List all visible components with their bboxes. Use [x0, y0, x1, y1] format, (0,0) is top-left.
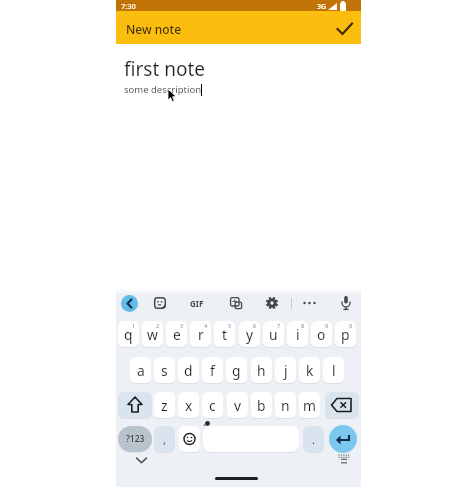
staticText: x	[185, 396, 193, 415]
button[interactable]	[336, 453, 352, 465]
staticText: 5	[228, 322, 232, 329]
staticText: y	[246, 325, 254, 344]
staticText: q	[124, 325, 133, 344]
button[interactable]: c	[202, 392, 223, 418]
button[interactable]: q	[118, 321, 139, 347]
staticText: v	[234, 396, 242, 415]
staticText: 6	[253, 322, 257, 329]
button[interactable]: k	[299, 357, 320, 383]
button[interactable]: n	[275, 392, 296, 418]
button[interactable]	[118, 392, 152, 418]
staticText: s	[161, 361, 168, 380]
button[interactable]: ?123	[118, 426, 152, 452]
button[interactable]: s	[154, 357, 175, 383]
staticText: 9	[325, 322, 329, 329]
button[interactable]: i	[287, 321, 308, 347]
staticText: u	[269, 325, 278, 344]
button[interactable]: e	[166, 321, 187, 347]
button[interactable]: b	[251, 392, 272, 418]
button[interactable]: .	[303, 426, 324, 452]
button[interactable]	[329, 425, 357, 453]
staticText: ,	[163, 432, 166, 447]
staticText: 4	[204, 322, 208, 329]
button[interactable]	[325, 392, 359, 418]
staticText: New note	[126, 21, 182, 37]
button[interactable]: h	[251, 357, 272, 383]
staticText: 2	[156, 322, 160, 329]
staticText: r	[198, 325, 204, 344]
staticText: j	[284, 361, 288, 380]
button[interactable]	[301, 298, 318, 308]
button[interactable]: p	[335, 321, 356, 347]
staticText: c	[209, 396, 216, 415]
staticText: .	[312, 432, 315, 447]
button[interactable]: d	[178, 357, 199, 383]
staticText: i	[296, 325, 300, 344]
button[interactable]: t	[214, 321, 235, 347]
staticText: e	[173, 325, 181, 344]
staticText: h	[257, 361, 266, 380]
staticText: p	[341, 325, 350, 344]
staticText: f	[210, 361, 215, 380]
button[interactable]: GIF	[187, 298, 207, 309]
staticText: 0	[349, 322, 353, 329]
staticText: g	[232, 361, 241, 380]
staticText: 7:30	[121, 1, 136, 11]
staticText: b	[257, 396, 266, 415]
staticText: 7	[277, 322, 281, 329]
button[interactable]	[154, 297, 166, 309]
button[interactable]	[134, 455, 149, 466]
button[interactable]: j	[275, 357, 296, 383]
button[interactable]: New note	[116, 11, 361, 44]
button[interactable]	[340, 295, 352, 311]
button[interactable]: r	[190, 321, 211, 347]
staticText: w	[147, 325, 158, 344]
button[interactable]	[179, 426, 200, 452]
button[interactable]: y	[239, 321, 260, 347]
button[interactable]: ,	[154, 426, 175, 452]
staticText: z	[161, 396, 168, 415]
staticText: a	[137, 361, 145, 380]
staticText: k	[306, 361, 314, 380]
button[interactable]: g	[226, 357, 247, 383]
button[interactable]: z	[154, 392, 175, 418]
staticText: m	[303, 396, 316, 415]
button[interactable]: o	[311, 321, 332, 347]
button[interactable]: w	[142, 321, 163, 347]
button[interactable]	[334, 20, 356, 38]
staticText: n	[281, 396, 290, 415]
button[interactable]: f	[202, 357, 223, 383]
button[interactable]	[121, 295, 138, 312]
button[interactable]: a	[130, 357, 151, 383]
button[interactable]	[230, 297, 242, 309]
staticText: d	[184, 361, 193, 380]
staticText: 3G	[317, 2, 327, 12]
staticText: 1	[132, 322, 136, 329]
staticText: 3	[180, 322, 184, 329]
button[interactable]: x	[178, 392, 199, 418]
staticText: l	[332, 361, 336, 380]
staticText: o	[317, 325, 326, 344]
button[interactable]: l	[323, 357, 344, 383]
staticText: ?123	[126, 433, 145, 445]
button[interactable]: v	[227, 392, 248, 418]
staticText: GIF	[190, 298, 204, 309]
button[interactable]: u	[263, 321, 284, 347]
staticText: first note	[124, 56, 205, 82]
staticText: 8	[301, 322, 305, 329]
staticText: some description	[124, 83, 202, 96]
button[interactable]: m	[299, 392, 320, 418]
button[interactable]	[265, 296, 279, 310]
staticText: t	[222, 325, 227, 344]
